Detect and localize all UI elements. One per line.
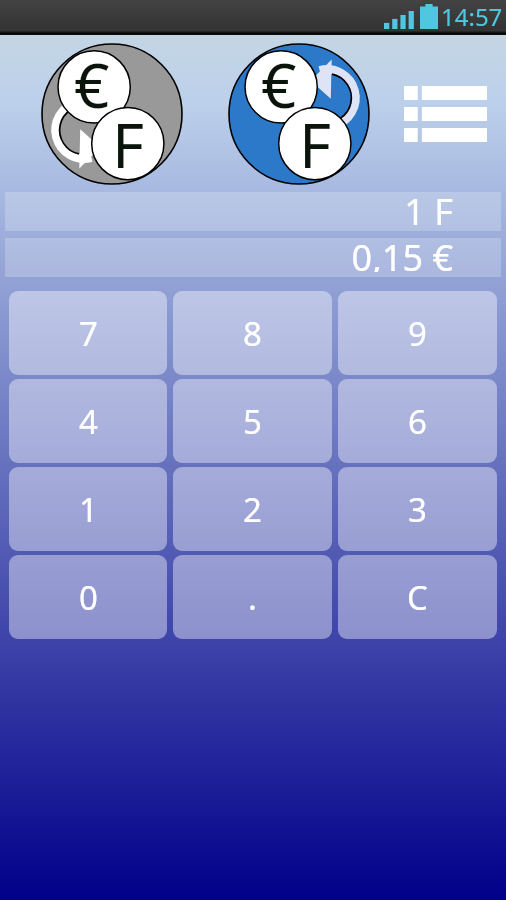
button[interactable]: Menu bbox=[390, 43, 500, 185]
staticText: 14:57 bbox=[441, 0, 503, 32]
staticText: € bbox=[261, 42, 297, 126]
staticText: 0,15 € bbox=[351, 233, 453, 272]
button[interactable]: 3 bbox=[338, 467, 497, 551]
button[interactable]: Convert Franc to Euro bbox=[41, 43, 183, 185]
staticText: 7 bbox=[79, 311, 98, 356]
button[interactable]: 6 bbox=[338, 379, 497, 463]
staticText: 2 bbox=[243, 487, 262, 532]
staticText: 6 bbox=[408, 399, 427, 444]
button[interactable]: 4 bbox=[9, 379, 167, 463]
staticText: F bbox=[299, 102, 332, 186]
button[interactable]: 1 bbox=[9, 467, 167, 551]
button[interactable]: 8 bbox=[173, 291, 332, 375]
button[interactable]: 7 bbox=[9, 291, 167, 375]
staticText: 5 bbox=[243, 399, 262, 444]
staticText: F bbox=[112, 102, 145, 186]
staticText: 0 bbox=[79, 575, 98, 620]
button[interactable]: 2 bbox=[173, 467, 332, 551]
button[interactable]: 0 bbox=[9, 555, 167, 639]
staticText: 3 bbox=[408, 487, 427, 532]
staticText: C bbox=[407, 575, 428, 620]
button[interactable]: 9 bbox=[338, 291, 497, 375]
button[interactable]: . bbox=[173, 555, 332, 639]
button[interactable]: 5 bbox=[173, 379, 332, 463]
staticText: 4 bbox=[79, 399, 98, 444]
staticText: 1 F bbox=[404, 187, 453, 226]
button[interactable]: 0,15 € bbox=[5, 238, 501, 277]
button[interactable]: C bbox=[338, 555, 497, 639]
staticText: € bbox=[74, 42, 110, 126]
staticText: 9 bbox=[408, 311, 427, 356]
staticText: 8 bbox=[243, 311, 262, 356]
staticText: 1 bbox=[79, 487, 98, 532]
button[interactable]: Convert Euro to Franc bbox=[228, 43, 370, 185]
button[interactable]: 1 F bbox=[5, 192, 501, 231]
staticText: . bbox=[248, 575, 257, 620]
